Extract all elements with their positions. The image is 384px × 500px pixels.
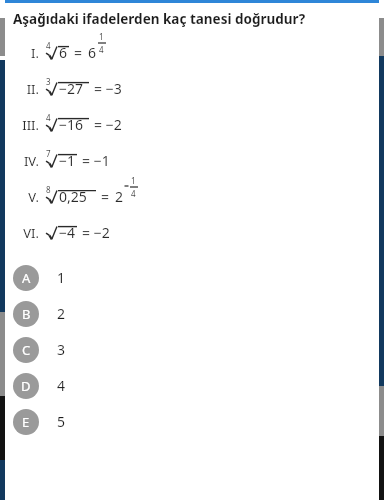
staticText: 4 (99, 44, 104, 53)
staticText: I. (31, 44, 39, 62)
staticText: = −2 (94, 115, 122, 134)
staticText: D (21, 377, 31, 395)
staticText: V. (28, 188, 39, 206)
staticText: 4 (46, 112, 51, 123)
staticText: = −2 (82, 223, 110, 242)
staticText: 3 (46, 76, 51, 87)
staticText: 6 (59, 43, 68, 62)
staticText: E (22, 413, 30, 431)
staticText: 5 (57, 412, 66, 431)
staticText: C (22, 341, 31, 359)
staticText: IV. (23, 152, 39, 170)
button[interactable]: B (13, 300, 374, 327)
staticText: 3 (57, 340, 66, 359)
staticText: III. (22, 116, 39, 134)
staticText: 2 (57, 304, 66, 323)
staticText: = (101, 187, 110, 206)
staticText: II. (26, 80, 39, 98)
staticText: −4 (59, 223, 76, 242)
staticText: 4 (46, 40, 51, 51)
staticText: 1 (57, 268, 66, 287)
staticText: 7 (46, 148, 51, 159)
button[interactable]: E (13, 408, 374, 435)
button[interactable]: D (13, 372, 374, 399)
staticText: = −3 (94, 79, 122, 98)
staticText: Aşağıdaki ifadelerden kaç tanesi doğrudu… (13, 10, 306, 28)
staticText: 4 (57, 376, 66, 395)
staticText: A (22, 269, 31, 287)
staticText: 2 (115, 187, 124, 206)
staticText: 1 (99, 31, 104, 42)
staticText: VI. (23, 224, 39, 242)
button[interactable]: C (13, 336, 374, 363)
staticText: 8 (46, 184, 51, 195)
button[interactable]: A (13, 264, 374, 291)
staticText: 6 (88, 43, 97, 62)
staticText: −1 (59, 151, 76, 170)
staticText: = (74, 43, 83, 62)
staticText: −27 (59, 79, 84, 98)
staticText: 0,25 (59, 187, 87, 206)
staticText: = −1 (82, 151, 110, 170)
staticText: B (22, 305, 31, 323)
staticText: −16 (59, 115, 84, 134)
staticText: 1 (131, 175, 136, 186)
staticText: 4 (131, 188, 136, 197)
